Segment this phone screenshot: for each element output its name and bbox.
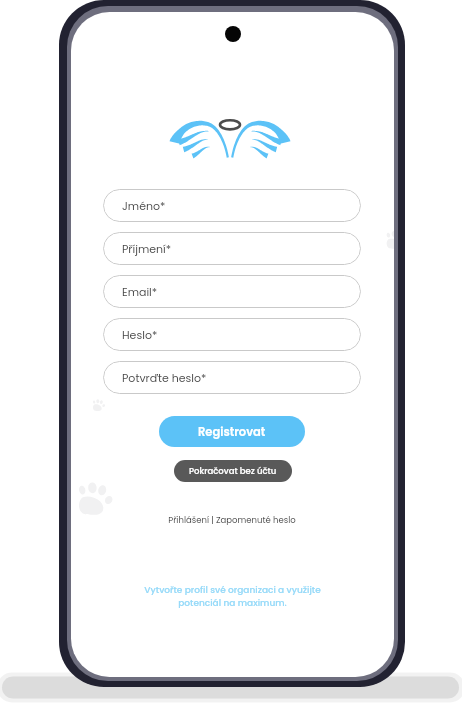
button[interactable]: Potvrďte heslo*: [103, 361, 361, 394]
staticText: Registrovat: [198, 424, 266, 440]
button[interactable]: Přihlášení | Zapomenuté heslo: [168, 514, 296, 526]
staticText: Pokračovat bez účtu: [189, 465, 277, 477]
button[interactable]: Registrovat: [159, 416, 305, 447]
button[interactable]: Heslo*: [103, 318, 361, 351]
staticText: Email*: [122, 284, 158, 299]
staticText: Potvrďte heslo*: [122, 370, 207, 385]
staticText: Vytvořte profil své organizaci a využijt…: [144, 584, 321, 609]
staticText: Příjmení*: [122, 241, 172, 256]
button[interactable]: Příjmení*: [103, 232, 361, 265]
button[interactable]: Jméno*: [103, 189, 361, 222]
staticText: Heslo*: [122, 327, 158, 342]
staticText: Jméno*: [122, 198, 166, 213]
button[interactable]: Pokračovat bez účtu: [174, 460, 292, 482]
button[interactable]: Email*: [103, 275, 361, 308]
